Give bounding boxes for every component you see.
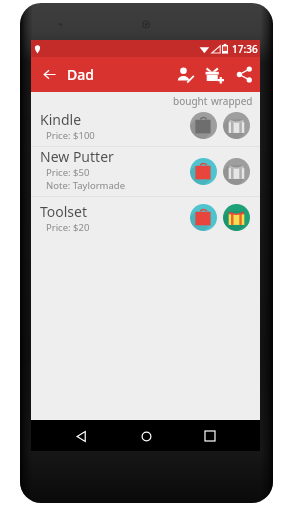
- staticText: Toolset: [40, 202, 88, 221]
- button[interactable]: Home: [131, 421, 161, 451]
- button[interactable]: Wrapped: [220, 109, 253, 142]
- staticText: Price: $50: [46, 166, 90, 179]
- button[interactable]: Wrapped: [220, 201, 253, 234]
- button[interactable]: Bought: [187, 201, 220, 234]
- staticText: Kindle: [40, 110, 82, 129]
- staticText: wrapped: [211, 94, 253, 108]
- button[interactable]: Recents: [195, 421, 225, 451]
- button[interactable]: Bought: [187, 155, 220, 188]
- button[interactable]: Back: [66, 421, 96, 451]
- button[interactable]: Bought: [187, 109, 220, 142]
- button[interactable]: Kindle: [31, 110, 260, 146]
- button[interactable]: Add gift: [199, 57, 229, 92]
- button[interactable]: Toolset: [31, 197, 260, 239]
- staticText: bought: [173, 94, 208, 108]
- staticText: Note: Taylormade: [46, 179, 126, 192]
- staticText: New Putter: [40, 147, 114, 166]
- staticText: Dad: [67, 65, 94, 84]
- button[interactable]: New Putter: [31, 147, 260, 196]
- button[interactable]: Wrapped: [220, 155, 253, 188]
- button[interactable]: Share: [229, 57, 259, 92]
- button[interactable]: Back: [36, 57, 62, 92]
- button[interactable]: Add person: [171, 57, 199, 92]
- staticText: Price: $100: [46, 129, 95, 142]
- staticText: Price: $20: [46, 221, 90, 234]
- staticText: 17:36: [232, 42, 258, 56]
